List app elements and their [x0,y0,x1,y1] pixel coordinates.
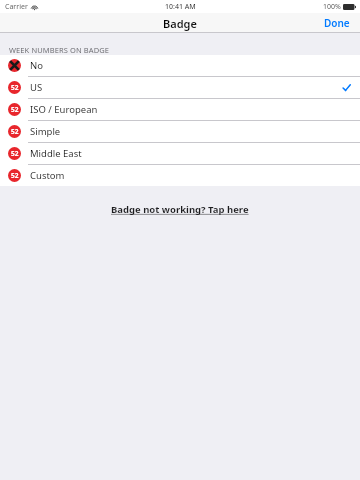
staticText: WEEK NUMBERS ON BADGE [9,45,110,55]
button[interactable]: 52 [0,143,360,164]
button[interactable]: Badge not working? Tap here [105,200,255,219]
staticText: Done [324,16,350,30]
staticText: 10:41 AM [165,2,196,12]
button[interactable]: 52 [0,165,360,186]
button[interactable]: 52 [0,121,360,142]
staticText: 52 [11,105,19,114]
other: Selected [342,83,351,92]
button[interactable]: Done [314,13,360,33]
staticText: 52 [11,127,19,136]
staticText: US [30,81,43,94]
staticText: Badge [163,16,197,31]
staticText: Carrier [5,2,28,12]
staticText: Badge not working? Tap here [111,203,249,216]
staticText: Simple [30,125,61,138]
staticText: 52 [11,171,19,180]
button[interactable]: 52 [0,99,360,120]
staticText: Custom [30,169,65,182]
staticText: 52 [11,83,19,92]
staticText: 52 [11,149,19,158]
staticText: 100% [323,2,341,12]
button[interactable]: 52 [0,77,360,98]
button[interactable]: No [0,55,360,76]
staticText: ISO / European [30,103,98,116]
staticText: No [30,59,43,72]
staticText: Middle East [30,147,82,160]
